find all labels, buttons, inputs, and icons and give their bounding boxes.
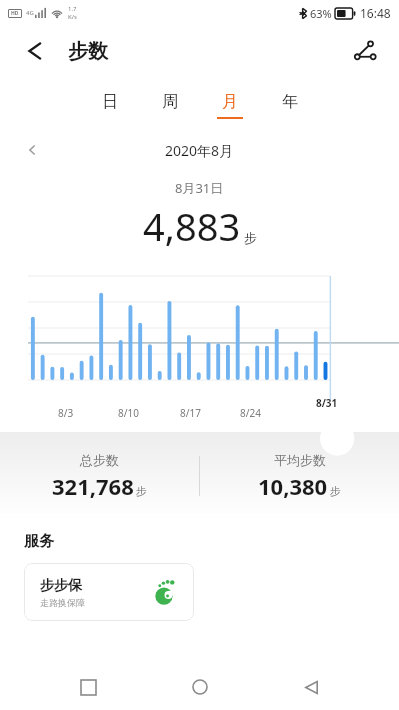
button[interactable]: Share [343,29,387,73]
staticText: 月 [222,92,238,112]
button[interactable]: 月 [200,88,260,123]
staticText: 63% [310,6,332,21]
staticText: 2020年8月 [165,141,234,160]
staticText: 走路换保障 [40,597,85,608]
staticText: 周 [162,92,178,112]
staticText: 平均步数 [274,452,326,468]
button[interactable]: 周 [140,88,200,123]
staticText: 服务 [24,532,54,551]
staticText: 8月31日 [175,179,224,197]
staticText: 8/3 [58,406,74,420]
button[interactable]: 平均步数 [200,452,399,501]
staticText: 步 [244,230,257,246]
staticText: 步数 [68,39,108,64]
button[interactable]: 总步数 [0,452,199,501]
button[interactable]: 日 [80,88,140,123]
staticText: K/s [68,13,77,21]
staticText: 8/17 [180,406,201,420]
button[interactable]: Back [14,29,58,73]
button[interactable]: 步步保 [24,563,194,621]
staticText: 8/24 [240,406,261,420]
staticText: 16:48 [360,5,391,21]
staticText: 8/31 [316,396,338,410]
staticText: 总步数 [80,452,119,468]
staticText: 步 [136,484,147,498]
staticText: 日 [102,92,118,112]
staticText: 4,883 [143,200,241,252]
staticText: 321,768 [52,471,134,501]
staticText: 步 [330,484,341,498]
button[interactable]: Previous month [18,137,48,163]
staticText: 步步保 [40,577,82,595]
button[interactable]: 年 [260,88,320,123]
staticText: HD [11,10,19,17]
staticText: 年 [282,92,298,112]
staticText: 8/10 [118,406,139,420]
staticText: 1.7 [68,5,77,13]
button[interactable]: Back [288,664,334,710]
button[interactable]: Recents [65,664,111,710]
staticText: 10,380 [258,471,328,501]
button[interactable]: Home [177,664,223,710]
staticText: 4G [26,9,34,17]
